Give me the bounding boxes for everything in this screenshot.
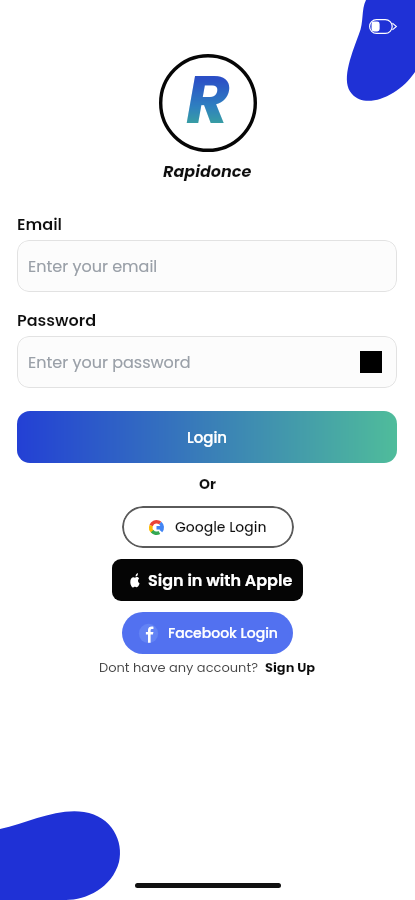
staticText: Enter your email: [28, 255, 382, 277]
staticText: Login: [187, 427, 228, 448]
button[interactable]: Google Login: [122, 506, 294, 548]
button[interactable]: Sign Up: [265, 658, 316, 676]
staticText: Rapidonce: [163, 160, 252, 182]
staticText: Password: [17, 309, 97, 331]
button[interactable]: Login: [17, 411, 397, 463]
other: Battery: [369, 19, 397, 34]
staticText: Enter your password: [28, 351, 360, 373]
button[interactable]: Facebook Login: [122, 612, 293, 654]
button[interactable]: Sign in with Apple: [112, 559, 303, 601]
button[interactable]: Enter your email: [17, 240, 397, 292]
staticText: R: [186, 53, 230, 147]
staticText: Dont have any account?: [99, 658, 258, 676]
staticText: Sign in with Apple: [148, 569, 293, 591]
staticText: Or: [199, 474, 216, 494]
staticText: Google Login: [175, 517, 267, 537]
staticText: Facebook Login: [168, 623, 278, 643]
staticText: Sign Up: [265, 658, 316, 676]
staticText: Email: [17, 213, 63, 235]
button[interactable]: Enter your password: [17, 336, 397, 388]
